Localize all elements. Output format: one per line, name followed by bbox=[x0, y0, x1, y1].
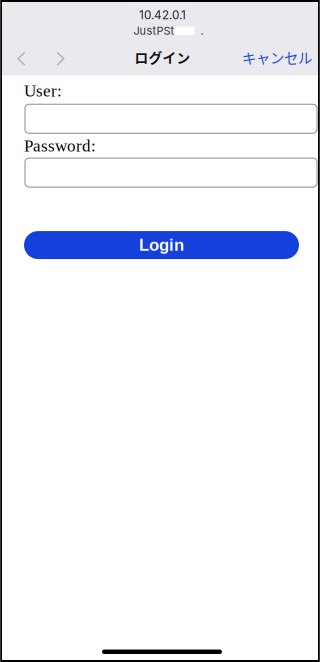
button[interactable]: Forward bbox=[41, 37, 80, 75]
staticText: Login bbox=[139, 236, 184, 254]
staticText: ログイン bbox=[134, 47, 190, 67]
staticText: . bbox=[200, 24, 203, 37]
button[interactable]: Back bbox=[2, 37, 41, 75]
button[interactable]: Login bbox=[24, 231, 299, 259]
staticText: JustPSt bbox=[133, 24, 174, 37]
staticText: User: bbox=[24, 81, 62, 100]
staticText: Password: bbox=[24, 136, 96, 155]
staticText: キャンセル bbox=[242, 47, 312, 68]
button[interactable]: キャンセル bbox=[236, 37, 318, 75]
staticText: 10.42.0.1 bbox=[139, 8, 186, 22]
